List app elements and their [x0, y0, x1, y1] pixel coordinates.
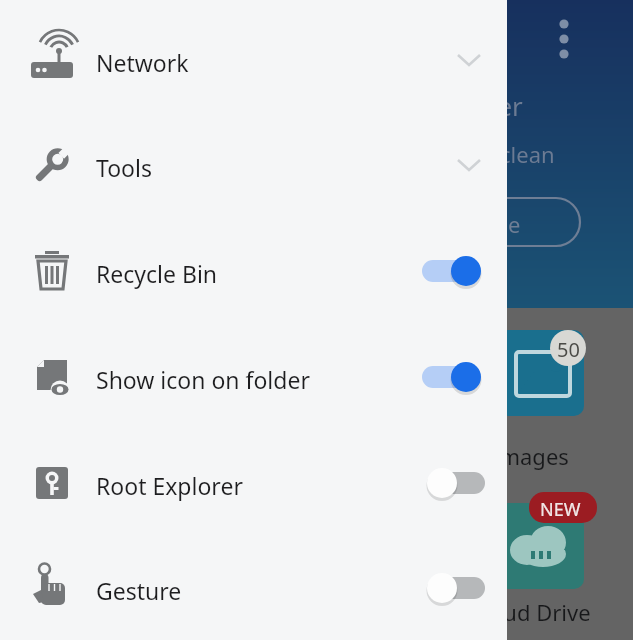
button[interactable]: Network [0, 7, 507, 111]
button[interactable]: Root Explorer [0, 431, 507, 535]
button[interactable]: Tools [0, 113, 507, 217]
button[interactable]: Gesture [0, 536, 507, 640]
button[interactable]: Recycle Bin [0, 219, 507, 323]
button[interactable]: Show icon on folder [0, 325, 507, 429]
